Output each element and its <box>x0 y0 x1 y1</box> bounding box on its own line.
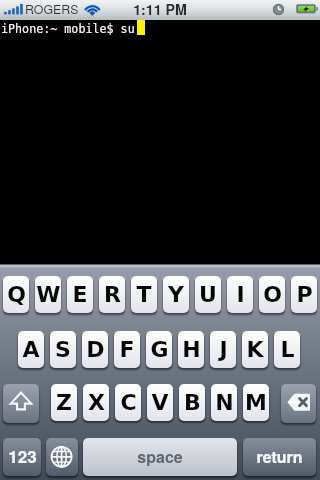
staticText: D <box>86 337 105 363</box>
staticText: iPhone:~ mobile$ su <box>1 22 135 36</box>
button[interactable]: G <box>146 331 172 368</box>
button[interactable]: H <box>178 331 204 368</box>
staticText: K <box>246 337 264 363</box>
button[interactable]: D <box>82 331 108 368</box>
staticText: Y <box>168 282 184 308</box>
staticText: G <box>150 337 169 363</box>
button[interactable]: O <box>259 276 285 313</box>
button[interactable]: Q <box>3 276 29 313</box>
button[interactable]: return <box>243 438 316 476</box>
staticText: A <box>22 337 40 363</box>
staticText: H <box>182 337 201 363</box>
button[interactable]: Y <box>163 276 189 313</box>
button[interactable]: P <box>291 276 317 313</box>
button[interactable]: F <box>114 331 140 368</box>
staticText: P <box>296 282 313 308</box>
button[interactable]: A <box>18 331 44 368</box>
button[interactable]: S <box>50 331 76 368</box>
staticText: space <box>137 445 183 468</box>
staticText: Q <box>7 282 26 308</box>
button[interactable]: Change keyboard <box>46 438 78 476</box>
staticText: I <box>236 282 245 308</box>
button[interactable]: Backspace <box>281 384 316 423</box>
button[interactable]: 123 <box>3 438 41 476</box>
staticText: F <box>119 337 135 363</box>
staticText: 123 <box>8 444 37 468</box>
staticText: C <box>120 390 137 416</box>
staticText: O <box>263 282 282 308</box>
staticText: V <box>151 390 169 416</box>
button[interactable]: Shift <box>3 384 39 423</box>
button[interactable]: X <box>83 384 109 421</box>
button[interactable]: E <box>67 276 93 313</box>
staticText: J <box>219 337 228 363</box>
button[interactable]: I <box>227 276 253 313</box>
staticText: Z <box>56 390 72 416</box>
button[interactable]: space <box>83 438 237 476</box>
staticText: X <box>88 390 105 416</box>
staticText: W <box>36 282 61 308</box>
button[interactable]: T <box>131 276 157 313</box>
button[interactable]: M <box>243 384 269 421</box>
staticText: R <box>104 282 121 308</box>
button[interactable]: B <box>179 384 205 421</box>
staticText: S <box>55 337 71 363</box>
staticText: T <box>136 282 152 308</box>
staticText: L <box>280 337 295 363</box>
button[interactable]: U <box>195 276 221 313</box>
button[interactable]: R <box>99 276 125 313</box>
staticText: return <box>256 445 303 468</box>
staticText: 1:11 PM <box>0 0 320 19</box>
button[interactable]: N <box>211 384 237 421</box>
staticText: B <box>184 390 201 416</box>
button[interactable]: K <box>242 331 268 368</box>
button[interactable]: V <box>147 384 173 421</box>
button[interactable]: Z <box>51 384 77 421</box>
button[interactable]: W <box>35 276 61 313</box>
button[interactable]: J <box>210 331 236 368</box>
staticText: ROGERS <box>25 0 79 18</box>
button[interactable]: L <box>274 331 300 368</box>
staticText: N <box>215 390 234 416</box>
staticText: E <box>72 282 88 308</box>
staticText: M <box>245 390 267 416</box>
button[interactable]: C <box>115 384 141 421</box>
staticText: U <box>199 282 217 308</box>
